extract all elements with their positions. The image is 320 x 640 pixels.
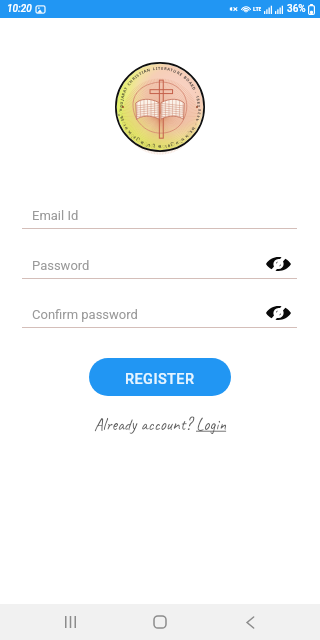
staticText: Confirm password (32, 307, 138, 322)
button[interactable]: Recent apps (50, 604, 90, 640)
staticText: Login (196, 414, 227, 435)
staticText: 36% (287, 3, 306, 15)
staticText: Already account? (94, 414, 196, 435)
button[interactable]: Already account? (94, 414, 227, 435)
button[interactable]: Toggle password visibility (264, 299, 292, 327)
staticText: Password (32, 258, 90, 273)
button[interactable]: REGISTER (89, 358, 231, 396)
staticText: REGISTER (125, 371, 195, 388)
button[interactable]: Back (230, 604, 270, 640)
staticText: 10:20 (7, 3, 32, 15)
staticText: LTE (253, 6, 262, 13)
staticText: Email Id (32, 208, 79, 223)
button[interactable]: Toggle password visibility (264, 250, 292, 278)
button[interactable]: Home (140, 604, 180, 640)
